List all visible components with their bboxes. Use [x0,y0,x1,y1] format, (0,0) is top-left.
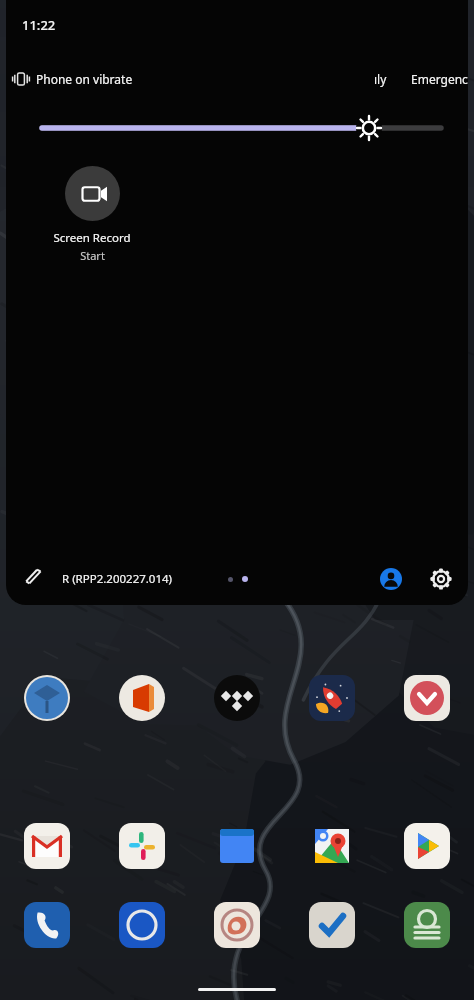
button[interactable]: Emergenc [411,71,468,87]
button[interactable]: App 13 [211,899,263,951]
button[interactable]: App 12 [116,899,168,951]
button[interactable]: Phone on vibrate [10,66,135,92]
button[interactable]: App 1 [21,672,73,724]
staticText: Phone on vibrate [36,71,133,87]
button[interactable]: App 15 [401,899,453,951]
button[interactable]: App 11 [21,899,73,951]
button[interactable]: App 14 [306,899,358,951]
button[interactable]: Screen Record [42,162,142,267]
button[interactable]: App 5 [401,672,453,724]
staticText: 11:22 [22,16,56,34]
button[interactable]: App 9 [306,820,358,872]
button[interactable]: App 7 [116,820,168,872]
staticText: R (RPP2.200227.014) [62,571,173,587]
button[interactable] [6,112,468,144]
button[interactable]: Settings [424,562,458,596]
staticText: Start [80,248,105,263]
button[interactable]: App 8 [211,820,263,872]
button[interactable]: App 6 [21,820,73,872]
staticText: Screen Record [53,230,131,246]
staticText: ıly [374,71,387,87]
button[interactable]: App 3 [211,672,263,724]
button[interactable]: Edit tiles [20,564,50,594]
button[interactable]: User account [374,562,408,596]
button[interactable]: App 4 [306,672,358,724]
staticText: Emergenc [411,71,468,87]
button[interactable]: App 10 [401,820,453,872]
button[interactable]: App 2 [116,672,168,724]
